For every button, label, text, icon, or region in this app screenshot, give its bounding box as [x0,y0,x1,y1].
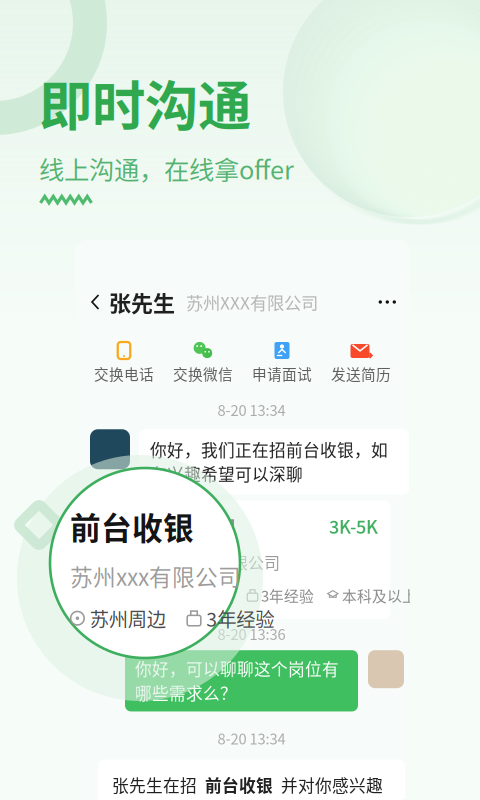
staticText: 8-20 13:36 [217,623,285,644]
staticText: 苏州xxx有限公司 [70,559,241,592]
staticText: 苏州周边 [174,585,234,606]
staticText: 交换电话 [94,363,154,384]
staticText: 申请面试 [252,363,312,384]
staticText: 3年经验 [261,585,314,606]
staticText: 本科及以上 [342,585,417,606]
button[interactable]: 交换电话 [84,341,163,384]
staticText: 发送简历 [331,363,391,384]
staticText: 线上沟通，在线拿offer [39,150,294,187]
staticText: 前台收银 [197,773,281,797]
staticText: 苏州xxx有限公司 [160,550,280,574]
button[interactable]: 返回 [75,282,109,322]
staticText: 你好，我们正在招前台收银，如有兴趣希望可以深聊 [150,437,388,485]
staticText: 交换微信 [173,363,233,384]
button[interactable]: 发送简历 [321,341,400,384]
button[interactable]: 交换微信 [163,341,242,384]
button[interactable]: 申请面试 [242,341,321,384]
staticText: 你好，可以聊聊这个岗位有哪些需求么？ [135,656,339,704]
staticText: 前台收银 [160,512,236,539]
staticText: 张先生在招 [112,773,197,797]
staticText: 张先生 [109,286,175,318]
staticText: 8-20 13:34 [217,727,285,749]
staticText: 3K-5K [329,513,378,539]
staticText: 苏州周边 [90,604,166,632]
staticText: 苏州XXX有限公司 [186,289,318,315]
button[interactable]: 前台收银 [148,500,390,619]
staticText: 3年经验 [206,604,274,632]
staticText: 前台收银 [70,504,194,548]
staticText: 即时沟通 [39,64,251,141]
button[interactable]: 更多 [365,286,410,318]
staticText: 并对你感兴趣 [281,773,383,797]
staticText: 8-20 13:34 [217,399,285,420]
